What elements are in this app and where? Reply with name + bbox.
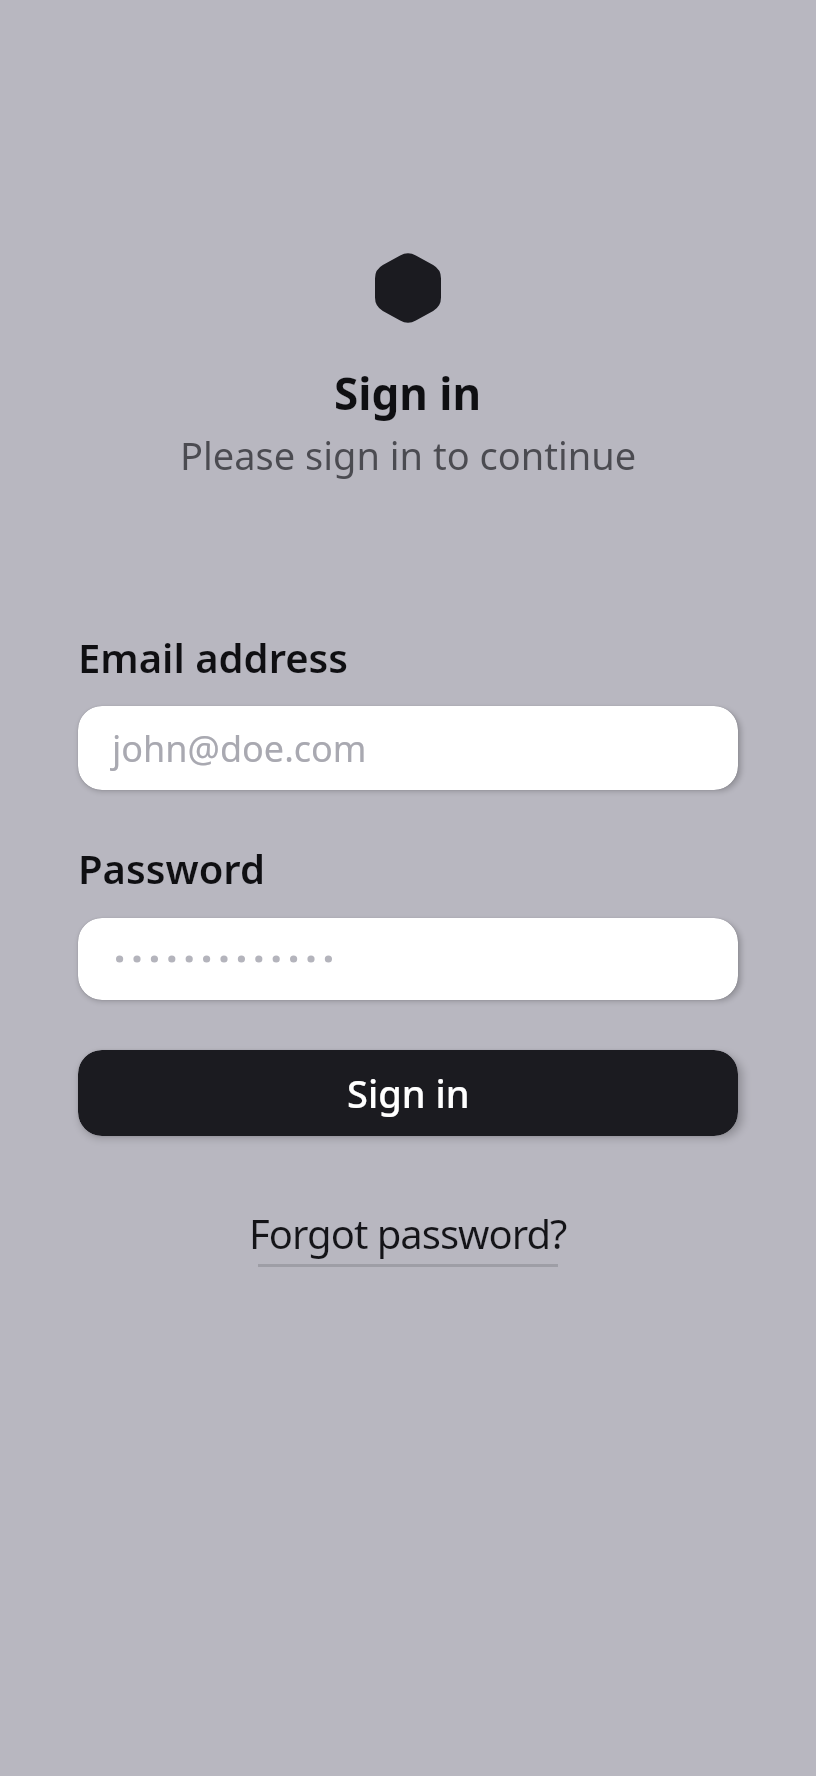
staticText: Forgot password?	[249, 1206, 567, 1260]
button[interactable]	[78, 918, 738, 1000]
staticText: Password	[78, 841, 265, 895]
button[interactable]: john@doe.com	[78, 706, 738, 790]
staticText: Sign in	[334, 363, 482, 423]
staticText: Email address	[78, 630, 349, 684]
button[interactable]: Forgot password?	[249, 1206, 567, 1267]
staticText: john@doe.com	[112, 724, 367, 773]
staticText: Please sign in to continue	[180, 429, 637, 481]
staticText: Sign in	[347, 1067, 470, 1119]
button[interactable]: Sign in	[78, 1050, 738, 1136]
